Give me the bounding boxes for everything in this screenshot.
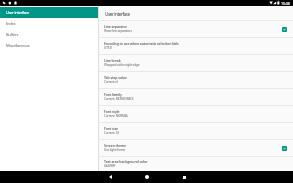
staticText: User interface bbox=[6, 10, 29, 15]
button[interactable]: Back bbox=[101, 171, 119, 183]
staticText: Current: MONOSPACE bbox=[104, 97, 134, 101]
button[interactable]: Line separator bbox=[99, 21, 293, 37]
staticText: Font family bbox=[104, 92, 122, 97]
button[interactable]: Toggle Line separator bbox=[282, 27, 287, 32]
button[interactable]: Line break bbox=[99, 55, 293, 71]
staticText: Current=4 bbox=[104, 80, 118, 84]
staticText: Font style bbox=[104, 109, 120, 114]
button[interactable]: Buffers bbox=[0, 29, 98, 40]
staticText: Line break bbox=[104, 58, 121, 63]
staticText: Line separator bbox=[104, 24, 128, 29]
button[interactable]: Font size bbox=[99, 123, 293, 139]
staticText: 10:48 bbox=[281, 1, 290, 6]
button[interactable]: Recents bbox=[175, 171, 193, 183]
staticText: User interface bbox=[105, 11, 130, 17]
staticText: Encoding to use when automatic selection… bbox=[104, 41, 179, 46]
button[interactable]: Text area background color bbox=[99, 157, 293, 171]
staticText: UTF-8 bbox=[104, 46, 112, 50]
staticText: Use light theme bbox=[104, 148, 126, 152]
staticText: Buffers bbox=[6, 32, 19, 37]
button[interactable]: Font style bbox=[99, 106, 293, 122]
button[interactable]: Encoding to use when automatic selection… bbox=[99, 38, 293, 54]
button[interactable]: Toggle Screen theme bbox=[282, 146, 287, 151]
button[interactable]: Tab stop value bbox=[99, 72, 293, 88]
button[interactable]: Miscellaneous bbox=[0, 40, 98, 51]
staticText: Text area background color bbox=[104, 159, 148, 164]
staticText: Index bbox=[6, 21, 16, 26]
staticText: Font size bbox=[104, 126, 118, 131]
staticText: #b2ffffff bbox=[104, 164, 116, 168]
staticText: Screen theme bbox=[104, 143, 127, 148]
button[interactable]: Screen theme bbox=[99, 140, 293, 156]
staticText: Miscellaneous bbox=[6, 43, 30, 48]
staticText: Wrapped at the right edge bbox=[104, 63, 140, 67]
button[interactable]: Home bbox=[138, 171, 156, 183]
staticText: Current: NORMAL bbox=[104, 114, 129, 118]
button[interactable]: Font family bbox=[99, 89, 293, 105]
button[interactable]: Index bbox=[0, 18, 98, 29]
staticText: Show line separators bbox=[104, 29, 132, 33]
staticText: Tab stop value bbox=[104, 75, 127, 80]
button[interactable]: User interface bbox=[99, 7, 293, 20]
staticText: Current: 10 bbox=[104, 131, 119, 135]
button[interactable]: User interface bbox=[0, 7, 98, 18]
